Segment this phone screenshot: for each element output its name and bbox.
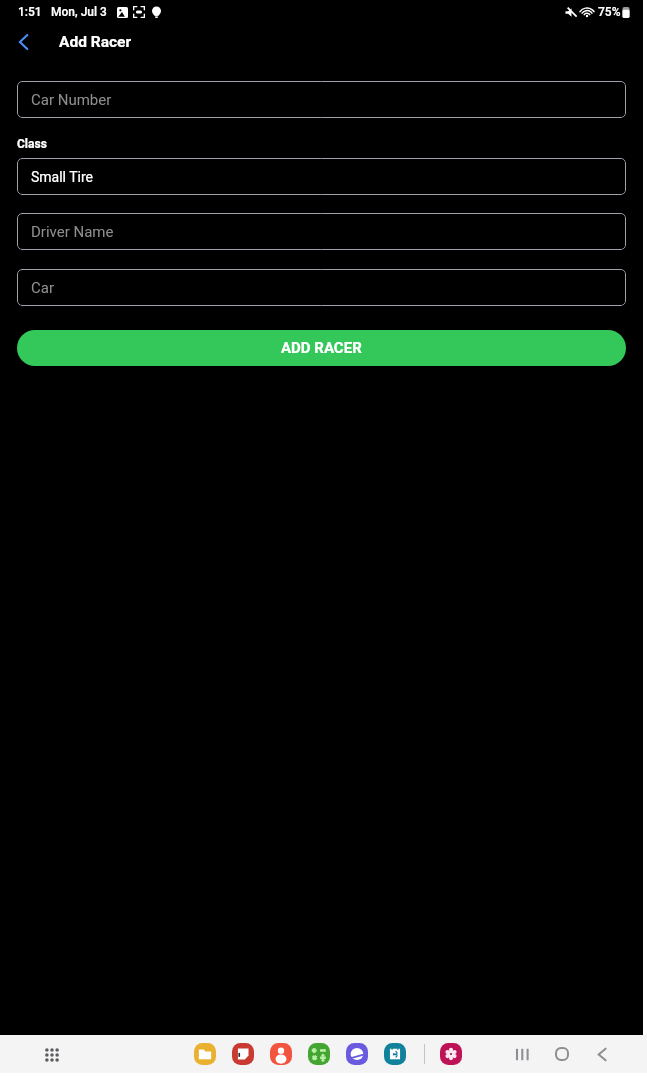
- button[interactable]: Driver Name: [17, 213, 626, 250]
- button[interactable]: Back: [587, 1039, 617, 1069]
- staticText: Add Racer: [59, 33, 132, 51]
- staticText: Mon, Jul 3: [51, 5, 107, 19]
- button[interactable]: Calculator: [308, 1043, 330, 1065]
- button[interactable]: ADD RACER: [17, 330, 626, 366]
- button[interactable]: Contacts: [270, 1043, 292, 1065]
- staticText: Car: [31, 279, 55, 297]
- button[interactable]: Recent apps: [507, 1039, 537, 1069]
- button[interactable]: Apps: [38, 1041, 65, 1068]
- staticText: Car Number: [31, 91, 112, 109]
- button[interactable]: Small Tire: [17, 158, 626, 195]
- staticText: Class: [17, 137, 47, 151]
- button[interactable]: Samsung Notes: [232, 1043, 254, 1065]
- staticText: 1:51: [18, 5, 42, 19]
- staticText: Driver Name: [31, 223, 114, 241]
- button[interactable]: Settings: [440, 1043, 462, 1065]
- button[interactable]: Car Number: [17, 81, 626, 118]
- button[interactable]: Internet: [346, 1043, 368, 1065]
- button[interactable]: Back: [8, 27, 38, 57]
- staticText: ADD RACER: [281, 339, 362, 357]
- button[interactable]: Car: [17, 269, 626, 306]
- staticText: 75%: [598, 5, 621, 19]
- button[interactable]: Calendar: [384, 1043, 406, 1065]
- button[interactable]: Home: [547, 1039, 577, 1069]
- button[interactable]: My Files: [194, 1043, 216, 1065]
- staticText: Small Tire: [31, 169, 94, 185]
